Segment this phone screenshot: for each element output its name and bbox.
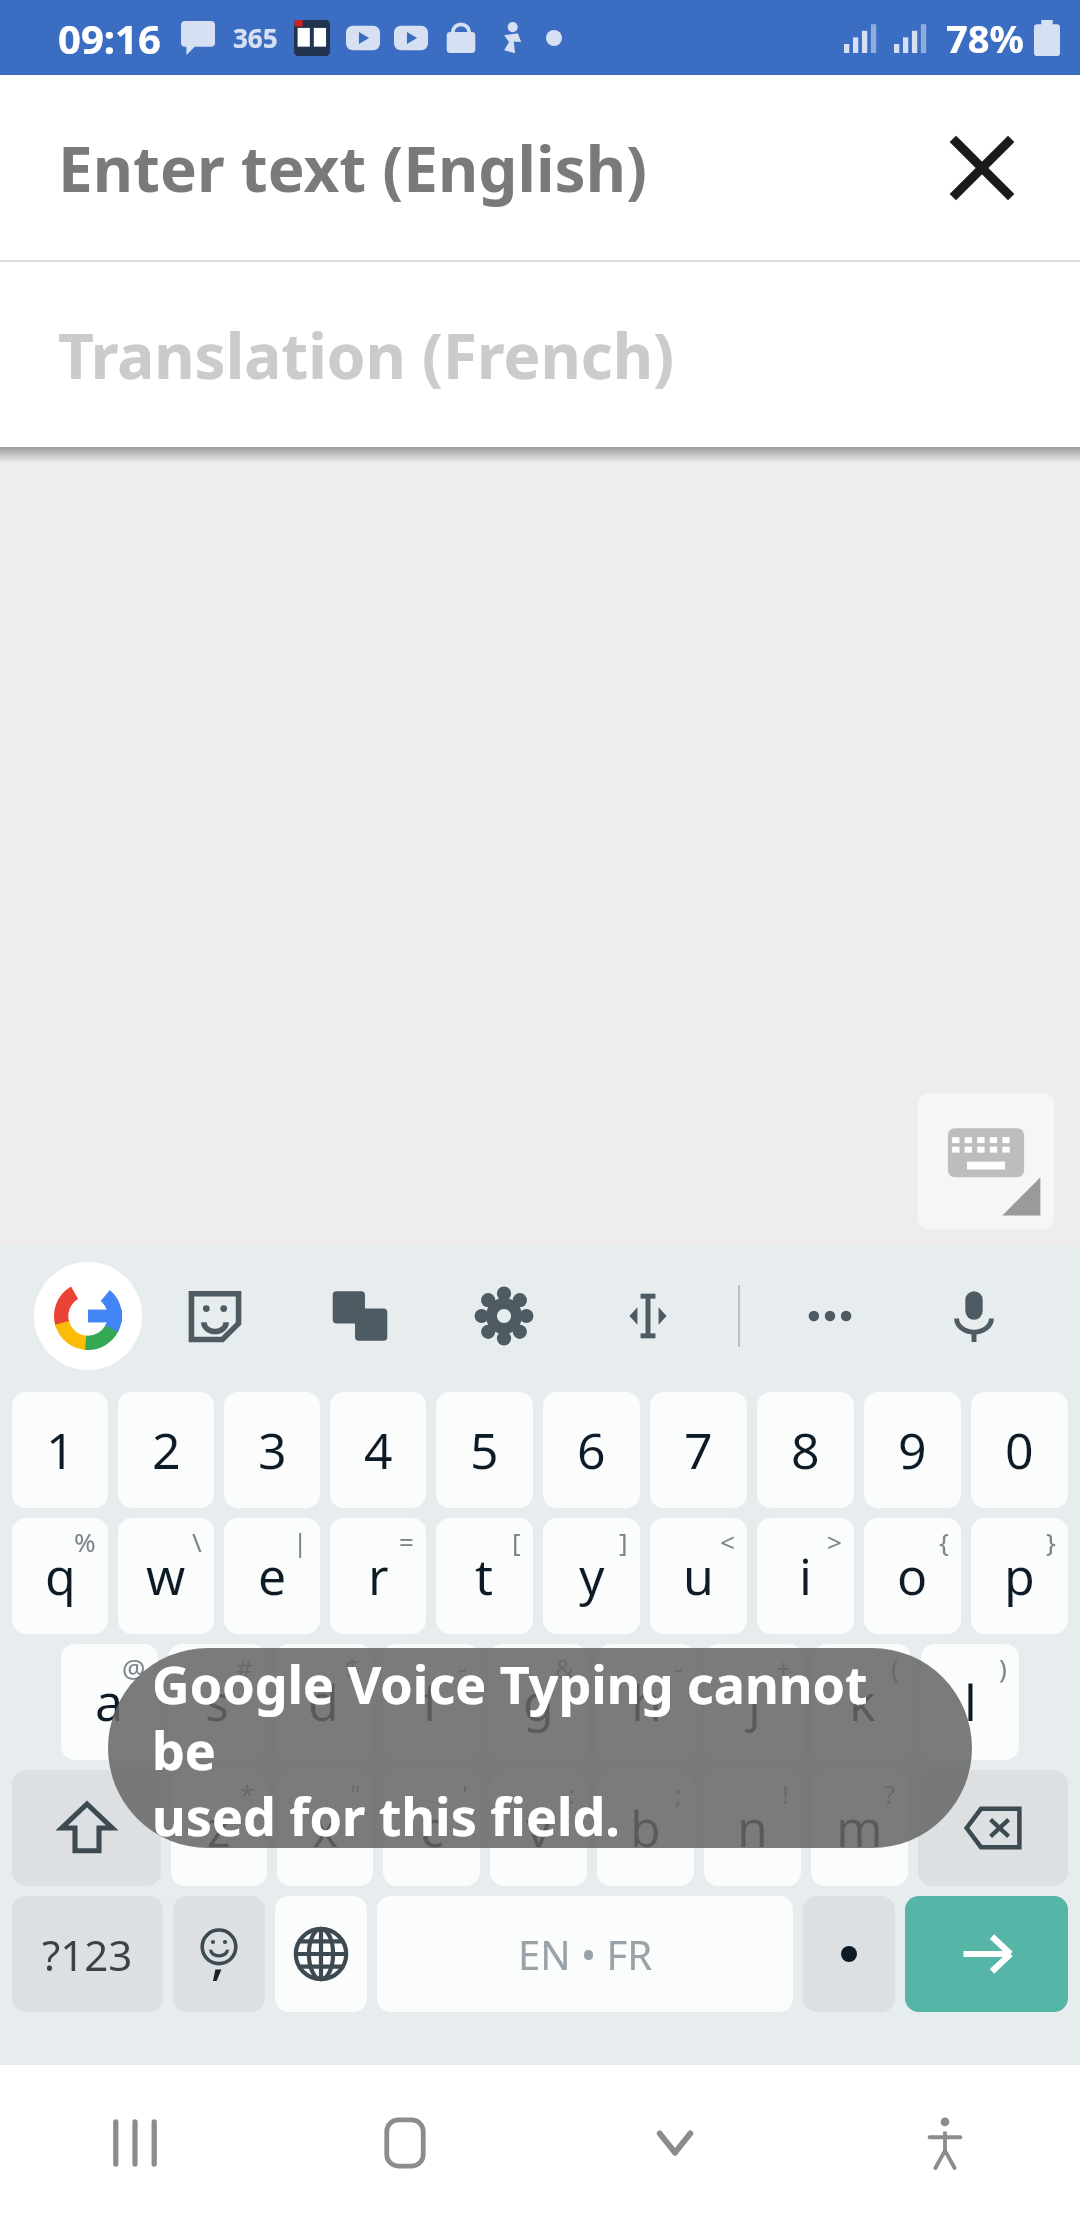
button[interactable] <box>803 1896 895 2012</box>
button[interactable]: o <box>864 1518 961 1634</box>
button[interactable]: More options <box>758 1245 902 1387</box>
button[interactable]: Recents <box>0 2065 270 2220</box>
staticText: " <box>350 1776 361 1811</box>
button[interactable]: h <box>597 1644 695 1760</box>
button[interactable]: f <box>382 1644 479 1760</box>
button[interactable]: EN • FR <box>377 1896 793 2012</box>
button[interactable]: Show keyboard <box>918 1093 1054 1229</box>
button[interactable]: Accessibility <box>810 2065 1080 2220</box>
button[interactable]: z <box>171 1770 267 1886</box>
button[interactable]: 4 <box>330 1392 426 1508</box>
button[interactable]: Translate <box>287 1245 432 1387</box>
button[interactable]: w <box>118 1518 214 1634</box>
staticText: - <box>674 1650 683 1685</box>
staticText: # <box>236 1650 253 1685</box>
button[interactable]: 0 <box>971 1392 1068 1508</box>
button[interactable]: Change language <box>275 1896 367 2012</box>
staticText: w <box>146 1542 186 1610</box>
button[interactable]: Enter text (English) <box>0 75 1080 260</box>
button[interactable]: q <box>12 1518 108 1634</box>
button[interactable]: m <box>811 1770 908 1886</box>
button[interactable]: Google <box>34 1262 142 1370</box>
button[interactable]: s <box>168 1644 265 1760</box>
staticText: } <box>1046 1524 1056 1559</box>
staticText: @ <box>122 1650 146 1685</box>
button[interactable]: Settings <box>432 1245 576 1387</box>
staticText: < <box>720 1524 735 1559</box>
staticText: $ <box>345 1650 360 1685</box>
staticText: g <box>523 1668 554 1736</box>
button[interactable]: g <box>489 1644 587 1760</box>
staticText: k <box>849 1668 876 1736</box>
button[interactable]: c <box>383 1770 480 1886</box>
staticText: 0 <box>1005 1416 1034 1484</box>
button[interactable]: Enter <box>905 1896 1068 2012</box>
staticText: p <box>1004 1542 1035 1610</box>
button[interactable]: 9 <box>864 1392 961 1508</box>
button[interactable]: 1 <box>12 1392 108 1508</box>
staticText: ? <box>884 1776 896 1811</box>
staticText: j <box>748 1668 761 1736</box>
staticText: b <box>630 1794 661 1862</box>
staticText: o <box>897 1542 928 1610</box>
button[interactable]: a <box>61 1644 158 1760</box>
staticText: > <box>827 1524 842 1559</box>
staticText: ] <box>619 1524 628 1559</box>
staticText: q <box>45 1542 76 1610</box>
button[interactable]: y <box>543 1518 640 1634</box>
button[interactable]: b <box>597 1770 694 1886</box>
button[interactable]: i <box>757 1518 854 1634</box>
staticText: = <box>399 1524 414 1559</box>
button[interactable]: j <box>705 1644 803 1760</box>
staticText: d <box>308 1668 339 1736</box>
button[interactable]: Stickers <box>142 1245 287 1387</box>
button[interactable]: 5 <box>436 1392 533 1508</box>
button[interactable]: d <box>275 1644 372 1760</box>
staticText: v <box>526 1794 552 1862</box>
staticText: | <box>293 1524 308 1559</box>
staticText: ; <box>675 1776 682 1811</box>
button[interactable]: Emoji <box>173 1896 265 2012</box>
staticText: ( <box>891 1650 899 1685</box>
button[interactable]: Close <box>934 120 1030 216</box>
button[interactable]: Translation (French) <box>0 262 1080 447</box>
button[interactable]: 2 <box>118 1392 214 1508</box>
staticText: 3 <box>258 1416 287 1484</box>
button[interactable]: k <box>813 1644 911 1760</box>
button[interactable]: Move cursor <box>576 1245 720 1387</box>
button[interactable]: x <box>277 1770 373 1886</box>
button[interactable]: 7 <box>650 1392 747 1508</box>
button[interactable]: r <box>330 1518 426 1634</box>
staticText: : <box>568 1776 575 1811</box>
button[interactable]: v <box>490 1770 587 1886</box>
button[interactable]: n <box>704 1770 801 1886</box>
button[interactable]: p <box>971 1518 1068 1634</box>
button[interactable]: Hide keyboard <box>540 2065 810 2220</box>
button[interactable]: Backspace <box>918 1770 1068 1886</box>
staticText: \ <box>192 1524 202 1559</box>
button[interactable]: e <box>224 1518 320 1634</box>
staticText: 1 <box>46 1416 75 1484</box>
button[interactable]: 3 <box>224 1392 320 1508</box>
button[interactable]: Shift <box>12 1770 161 1886</box>
button[interactable]: t <box>436 1518 533 1634</box>
staticText: u <box>683 1542 714 1610</box>
button[interactable]: u <box>650 1518 747 1634</box>
staticText: 6 <box>577 1416 606 1484</box>
button[interactable]: 8 <box>757 1392 854 1508</box>
button[interactable]: ?123 <box>12 1896 163 2012</box>
staticText: l <box>964 1668 977 1736</box>
button[interactable]: Voice input <box>902 1245 1046 1387</box>
button[interactable]: Home <box>270 2065 540 2220</box>
staticText: 7 <box>684 1416 713 1484</box>
staticText: h <box>631 1668 662 1736</box>
staticText: z <box>207 1794 231 1862</box>
staticText: t <box>475 1542 494 1610</box>
button[interactable]: l <box>921 1644 1019 1760</box>
staticText: + <box>776 1650 791 1685</box>
button[interactable]: 6 <box>543 1392 640 1508</box>
staticText: n <box>737 1794 768 1862</box>
staticText: & <box>555 1650 575 1685</box>
staticText: s <box>205 1668 229 1736</box>
staticText: 78% <box>946 12 1024 64</box>
